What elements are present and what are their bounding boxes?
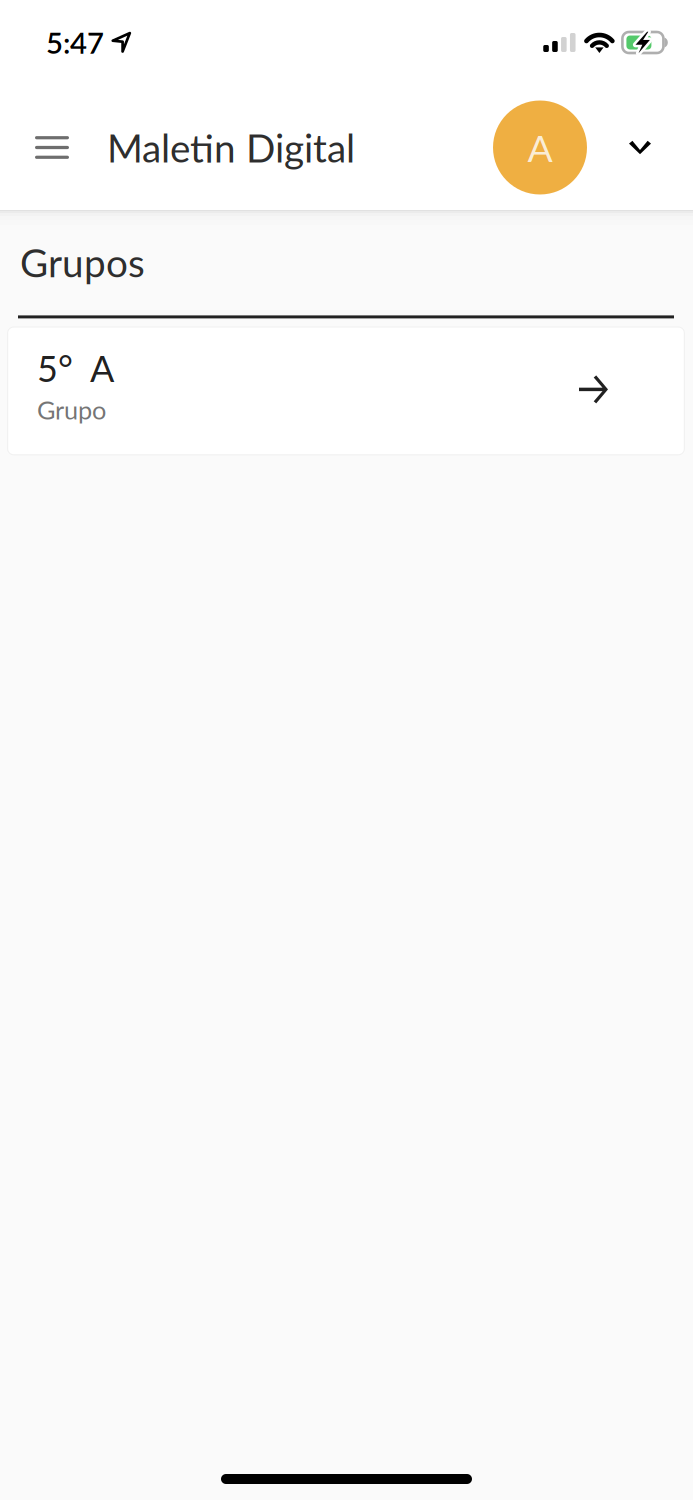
button[interactable]: Switch account bbox=[587, 85, 693, 210]
staticText: 5° A bbox=[37, 346, 114, 390]
button[interactable]: Account bbox=[493, 85, 587, 210]
staticText: Grupo bbox=[37, 395, 106, 425]
button[interactable]: Menu bbox=[0, 85, 104, 210]
staticText: Maletin Digital bbox=[107, 124, 355, 171]
staticText: A bbox=[527, 125, 552, 170]
staticText: 5:47 bbox=[46, 25, 104, 60]
staticText: Grupos bbox=[20, 239, 145, 285]
button[interactable]: 5° A bbox=[7, 326, 685, 455]
